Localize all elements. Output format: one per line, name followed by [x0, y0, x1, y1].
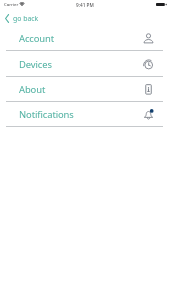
- staticText: About: [19, 83, 46, 96]
- staticText: Devices: [19, 58, 52, 71]
- staticText: 9:41 PM: [76, 2, 94, 8]
- button[interactable]: Account: [0, 26, 169, 51]
- other: Devices: [143, 59, 154, 70]
- other: About: [143, 84, 154, 95]
- staticText: Carrier: [4, 1, 19, 7]
- button[interactable]: About: [0, 77, 169, 102]
- button[interactable]: Notifications: [0, 102, 169, 127]
- staticText: go back: [13, 14, 39, 23]
- staticText: Notifications: [19, 108, 74, 121]
- other: Account: [143, 33, 154, 44]
- other: Notifications: [143, 109, 154, 120]
- button[interactable]: go back: [0, 12, 169, 24]
- staticText: Account: [19, 32, 55, 45]
- button[interactable]: Devices: [0, 52, 169, 77]
